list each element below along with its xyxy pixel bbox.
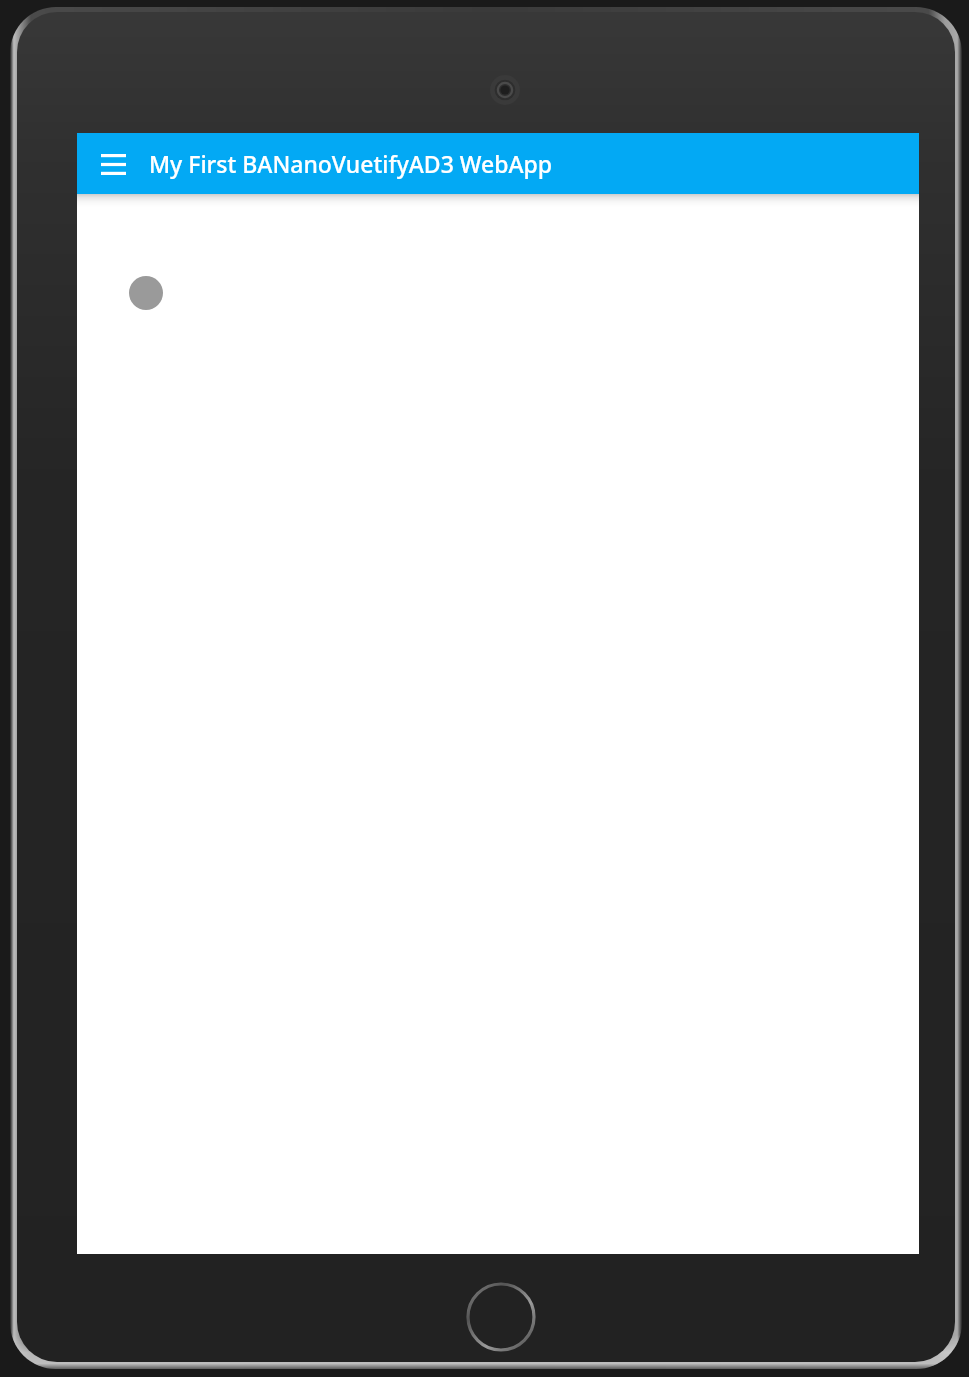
staticText: My First BANanoVuetifyAD3 WebApp xyxy=(149,148,553,179)
button[interactable]: Open navigation menu xyxy=(90,141,136,187)
button[interactable]: Avatar xyxy=(129,276,163,310)
